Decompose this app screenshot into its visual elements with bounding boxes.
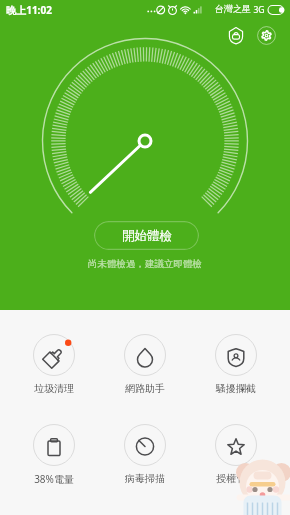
staticText: 台灣之星: [215, 3, 251, 14]
staticText: 尚未體檢過，建議立即體檢: [88, 258, 202, 270]
staticText: 授權管理: [216, 472, 256, 485]
button[interactable]: Settings: [250, 19, 283, 52]
button[interactable]: 授權管理: [190, 421, 281, 485]
button[interactable]: Security scan: [219, 19, 252, 52]
staticText: 病毒掃描: [125, 472, 165, 485]
staticText: 38%電量: [34, 472, 74, 486]
button[interactable]: 38%電量: [9, 421, 99, 486]
staticText: 3G: [253, 4, 265, 16]
staticText: 開始體檢: [122, 228, 172, 244]
staticText: 網路助手: [125, 382, 165, 395]
button[interactable]: 網路助手: [99, 331, 190, 395]
staticText: 騷擾攔截: [216, 382, 256, 395]
button[interactable]: 病毒掃描: [99, 421, 190, 485]
staticText: 晚上11:02: [6, 3, 52, 17]
button[interactable]: 騷擾攔截: [190, 331, 281, 395]
button[interactable]: 開始體檢: [94, 221, 199, 250]
staticText: 垃圾清理: [34, 382, 74, 395]
button[interactable]: 垃圾清理: [9, 331, 99, 395]
